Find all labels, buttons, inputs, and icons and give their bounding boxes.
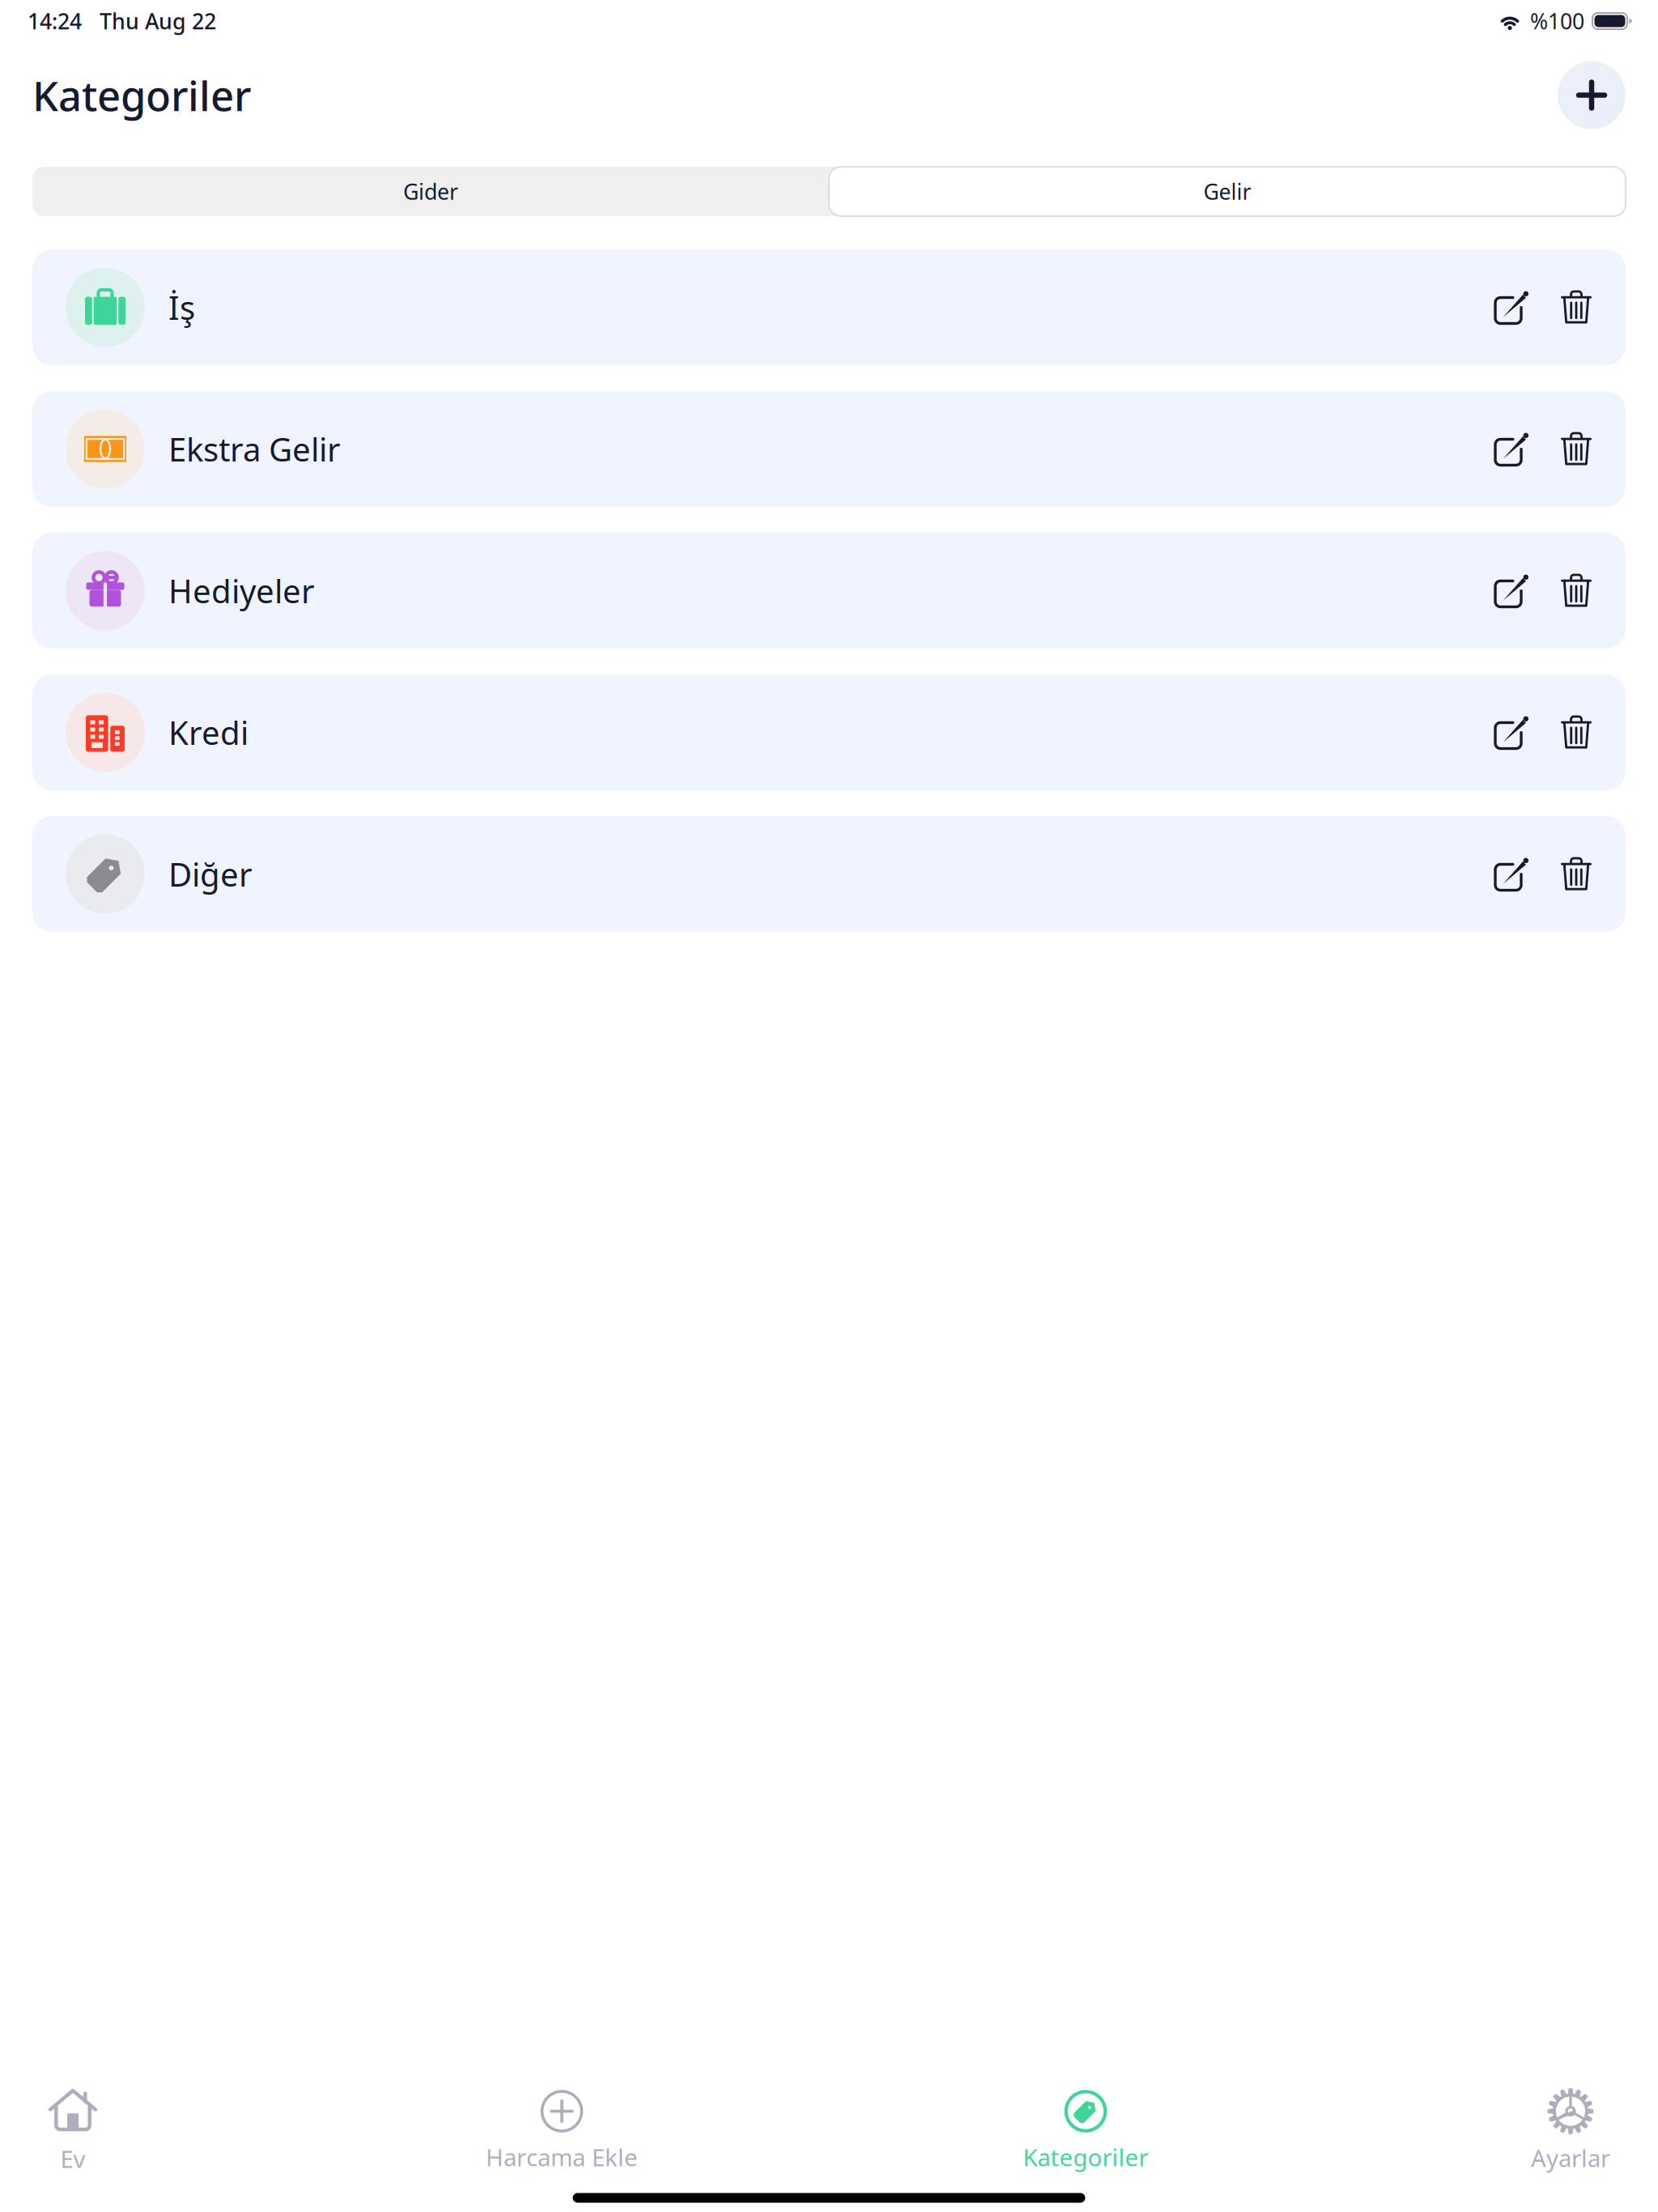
- button[interactable]: Harcama Ekle: [146, 2077, 978, 2184]
- button[interactable]: Diğer düzenle: [1479, 816, 1544, 932]
- button[interactable]: Kategori ekle: [1558, 61, 1626, 129]
- staticText: Ayarlar: [1531, 2142, 1610, 2174]
- button[interactable]: Kredi sil: [1544, 674, 1609, 790]
- staticText: Harcama Ekle: [486, 2141, 638, 2173]
- button[interactable]: Kategoriler: [978, 2077, 1193, 2184]
- button[interactable]: Hediyeler düzenle: [1479, 533, 1544, 649]
- staticText: İş: [168, 286, 195, 329]
- button[interactable]: Ekstra Gelir: [32, 391, 1479, 507]
- button[interactable]: Hediyeler: [32, 533, 1479, 649]
- staticText: %100: [1530, 7, 1584, 35]
- button[interactable]: Ekstra Gelir sil: [1544, 391, 1609, 507]
- button[interactable]: Ayarlar: [1193, 2076, 1658, 2185]
- staticText: Gider: [403, 177, 458, 206]
- staticText: Gelir: [1203, 177, 1251, 206]
- button[interactable]: Diğer sil: [1544, 816, 1609, 932]
- staticText: 14:24: [28, 7, 82, 35]
- button[interactable]: Diğer: [32, 816, 1479, 932]
- button[interactable]: Hediyeler sil: [1544, 533, 1609, 649]
- button[interactable]: Gelir: [829, 167, 1626, 216]
- staticText: Hediyeler: [168, 569, 315, 612]
- staticText: Diğer: [168, 852, 253, 895]
- button[interactable]: Kredi: [32, 674, 1479, 790]
- staticText: Kredi: [168, 711, 249, 754]
- staticText: Kategoriler: [1023, 2141, 1148, 2173]
- staticText: Thu Aug 22: [100, 7, 216, 35]
- button[interactable]: Ekstra Gelir düzenle: [1479, 391, 1544, 507]
- button[interactable]: İş düzenle: [1479, 249, 1544, 365]
- button[interactable]: Ev: [0, 2076, 146, 2186]
- button[interactable]: Kredi düzenle: [1479, 674, 1544, 790]
- staticText: Kategoriler: [32, 68, 251, 122]
- staticText: Ekstra Gelir: [168, 427, 341, 470]
- staticText: Ev: [60, 2143, 85, 2174]
- button[interactable]: Gider: [32, 167, 829, 216]
- button[interactable]: İş sil: [1544, 249, 1609, 365]
- button[interactable]: İş: [32, 249, 1479, 365]
